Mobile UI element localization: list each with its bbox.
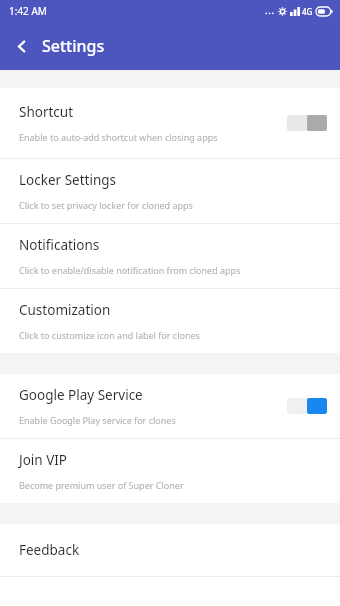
staticText: Join VIP: [19, 451, 68, 469]
staticText: Become premium user of Super Cloner: [19, 479, 184, 491]
staticText: Enable to auto-add shortcut when closing…: [19, 131, 218, 143]
staticText: Enable Google Play service for clones: [19, 414, 176, 426]
staticText: 1:42 AM: [9, 4, 47, 18]
button[interactable]: Notifications: [0, 224, 340, 288]
staticText: Click to set privacy locker for cloned a…: [19, 199, 193, 211]
staticText: Locker Settings: [19, 171, 116, 189]
button[interactable]: Customization: [0, 289, 340, 353]
staticText: Notifications: [19, 236, 100, 254]
button[interactable]: Switch on: [287, 395, 327, 417]
staticText: Google Play Service: [19, 386, 143, 404]
staticText: Feedback: [19, 541, 80, 559]
button[interactable]: Shortcut: [0, 88, 340, 158]
staticText: Settings: [42, 35, 105, 57]
staticText: Click to enable/disable notification fro…: [19, 264, 241, 276]
staticText: Shortcut: [19, 103, 74, 121]
staticText: Click to customize icon and label for cl…: [19, 329, 200, 341]
button[interactable]: Back: [0, 25, 42, 67]
button[interactable]: Locker Settings: [0, 159, 340, 223]
staticText: Customization: [19, 301, 111, 319]
staticText: 4G: [302, 6, 313, 17]
button[interactable]: Join VIP: [0, 439, 340, 503]
button[interactable]: Feedback: [0, 524, 340, 576]
button[interactable]: Google Play Service: [0, 374, 340, 438]
button[interactable]: Switch off: [287, 112, 327, 134]
